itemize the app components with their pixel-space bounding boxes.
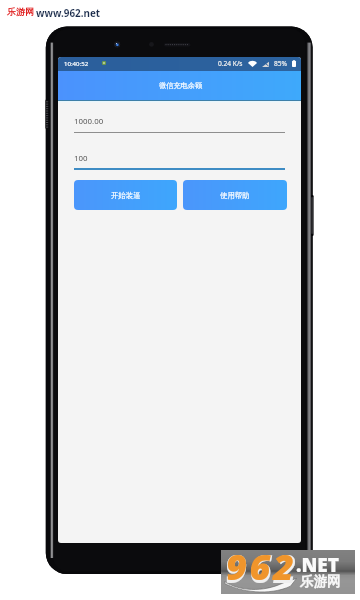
staticText: 微信充电余额: [159, 81, 203, 90]
staticText: 10:40:52: [64, 59, 89, 67]
staticText: www.962.net: [36, 6, 101, 19]
button[interactable]: 使用帮助: [183, 180, 287, 210]
button[interactable]: 1000.00: [74, 119, 285, 133]
staticText: 1000.00: [74, 116, 104, 127]
staticText: 100: [74, 153, 88, 164]
staticText: 962: [226, 542, 297, 586]
staticText: 0.24 K/s: [218, 59, 243, 68]
button[interactable]: 100: [74, 156, 285, 170]
staticText: 962: [225, 542, 299, 586]
staticText: 85%: [274, 59, 288, 68]
staticText: 乐游网: [7, 6, 34, 17]
staticText: 开始装逼: [111, 191, 141, 200]
staticText: .NET: [296, 552, 339, 578]
staticText: 使用帮助: [220, 191, 250, 200]
button[interactable]: 开始装逼: [74, 180, 177, 210]
staticText: 乐游网: [300, 573, 341, 590]
